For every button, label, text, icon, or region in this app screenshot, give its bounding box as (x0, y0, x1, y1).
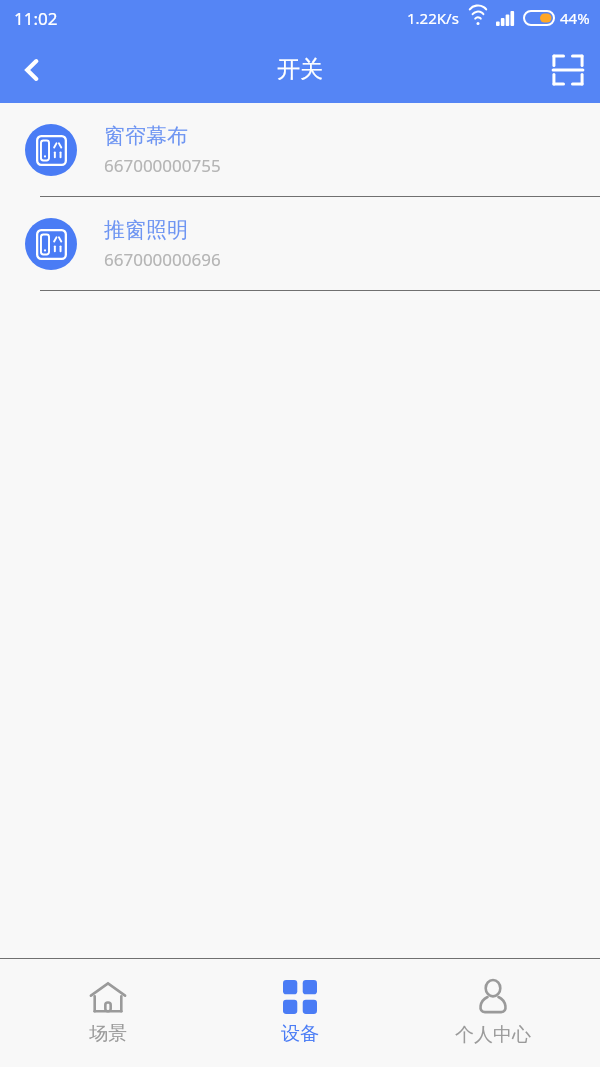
button[interactable]: 个人中心 (408, 959, 578, 1067)
staticText: 11:02 (14, 7, 58, 30)
button[interactable]: 设备 (215, 959, 385, 1067)
staticText: 44% (560, 8, 590, 28)
button[interactable]: 场景 (23, 959, 193, 1067)
button[interactable]: Back (0, 38, 64, 102)
staticText: 个人中心 (455, 1023, 531, 1047)
button[interactable]: Scan (536, 38, 600, 102)
staticText: 667000000696 (104, 248, 221, 271)
staticText: 开关 (277, 55, 323, 84)
staticText: 设备 (281, 1022, 319, 1046)
button[interactable]: 推窗照明 (0, 197, 600, 291)
staticText: 窗帘幕布 (104, 123, 188, 149)
staticText: 667000000755 (104, 154, 221, 177)
staticText: 推窗照明 (104, 217, 188, 243)
staticText: 场景 (89, 1022, 127, 1046)
staticText: 1.22K/s (407, 8, 459, 28)
button[interactable]: 窗帘幕布 (0, 103, 600, 197)
